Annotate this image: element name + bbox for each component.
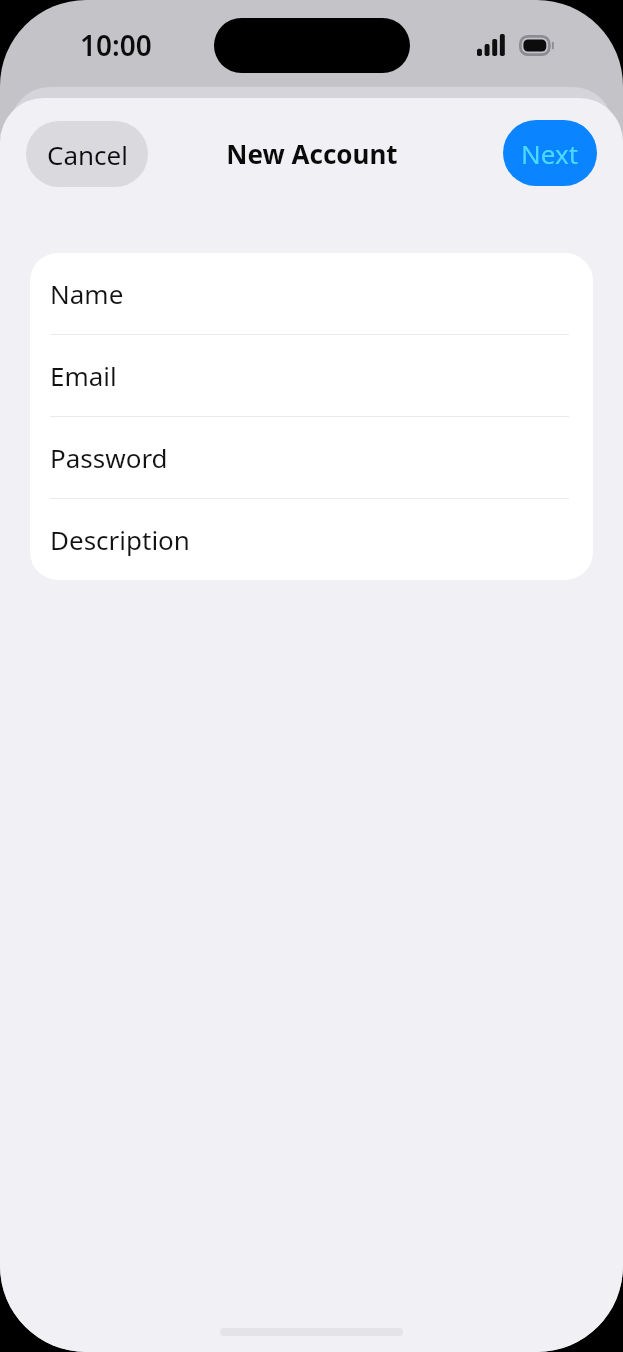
staticText: Next bbox=[521, 136, 579, 171]
staticText: Description bbox=[50, 522, 190, 557]
staticText: New Account bbox=[226, 136, 398, 171]
button[interactable]: Next bbox=[503, 120, 597, 186]
button[interactable]: Password bbox=[30, 417, 593, 499]
button[interactable]: Description bbox=[30, 499, 593, 580]
staticText: 10:00 bbox=[80, 26, 152, 64]
button[interactable]: Email bbox=[30, 335, 593, 417]
button[interactable]: Name bbox=[30, 253, 593, 335]
staticText: Email bbox=[50, 358, 117, 393]
button[interactable]: Cancel bbox=[26, 121, 148, 187]
staticText: Name bbox=[50, 276, 124, 311]
staticText: Password bbox=[50, 440, 168, 475]
staticText: Cancel bbox=[47, 137, 128, 172]
